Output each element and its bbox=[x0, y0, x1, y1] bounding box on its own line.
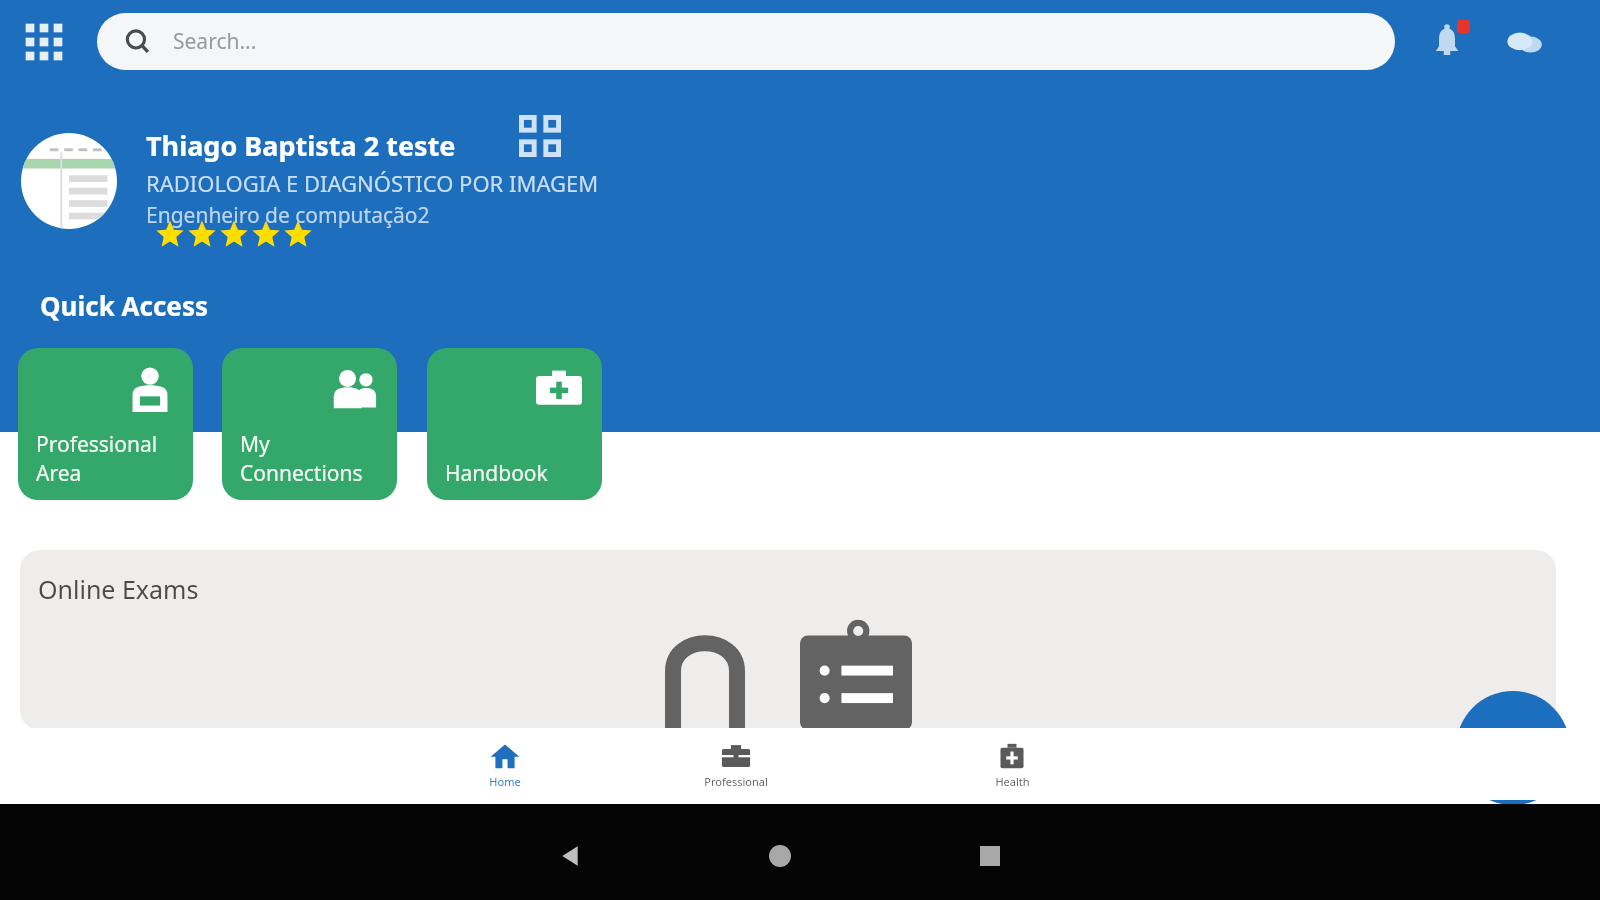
staticText: Handbook bbox=[445, 459, 548, 488]
button[interactable]: Professional bbox=[18, 348, 193, 500]
button[interactable]: QR code bbox=[512, 108, 568, 164]
button[interactable]: Notifications bbox=[1418, 14, 1476, 72]
button[interactable]: Professional bbox=[598, 728, 874, 800]
staticText: Quick Access bbox=[40, 288, 208, 323]
staticText: Engenheiro de computação2 bbox=[146, 201, 430, 230]
staticText: Home bbox=[489, 774, 521, 789]
button[interactable]: My bbox=[222, 348, 397, 500]
staticText: Professional bbox=[36, 430, 158, 459]
button[interactable]: Apps menu bbox=[16, 14, 72, 70]
button[interactable]: Handbook bbox=[427, 348, 602, 500]
button[interactable]: Online Exams bbox=[20, 550, 1556, 730]
button[interactable]: Home bbox=[412, 728, 598, 800]
button[interactable]: Health bbox=[874, 728, 1150, 800]
button[interactable] bbox=[21, 133, 117, 229]
button[interactable]: Home bbox=[758, 834, 802, 878]
button[interactable]: Messages bbox=[1496, 14, 1554, 72]
staticText: Area bbox=[36, 459, 82, 488]
button[interactable]: Recent apps bbox=[968, 834, 1012, 878]
staticText: Search... bbox=[173, 27, 257, 56]
button[interactable]: Back bbox=[548, 834, 592, 878]
staticText: My bbox=[240, 430, 270, 459]
staticText: Thiago Baptista 2 teste bbox=[146, 127, 456, 164]
staticText: Online Exams bbox=[38, 572, 199, 606]
staticText: Health bbox=[995, 774, 1030, 789]
button[interactable]: Search... bbox=[97, 13, 1395, 70]
staticText: Connections bbox=[240, 459, 363, 488]
staticText: Professional bbox=[704, 774, 768, 789]
staticText: RADIOLOGIA E DIAGNÓSTICO POR IMAGEM bbox=[146, 168, 599, 198]
button[interactable]: Add bbox=[1456, 691, 1570, 805]
